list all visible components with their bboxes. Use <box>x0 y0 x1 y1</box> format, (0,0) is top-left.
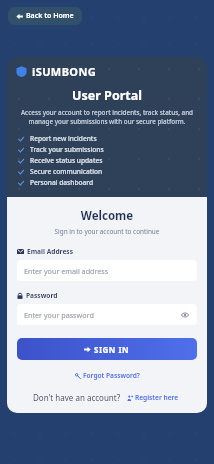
staticText: Back to Home <box>26 11 74 21</box>
staticText: User Portal <box>16 87 198 104</box>
staticText: Enter your email address <box>24 266 109 276</box>
staticText: Password <box>26 291 58 300</box>
staticText: Forgot Password? <box>83 371 140 380</box>
button[interactable]: Enter your email address <box>17 260 197 281</box>
staticText: Enter your password <box>24 310 94 320</box>
staticText: Personal dashboard <box>30 178 94 187</box>
button[interactable]: Enter your password <box>17 304 197 325</box>
staticText: Access your account to report incidents,… <box>16 108 198 126</box>
staticText: Sign in to your account to continue <box>17 227 197 236</box>
staticText: Email Address <box>27 247 73 256</box>
button[interactable]: Forgot Password? <box>72 370 143 381</box>
button[interactable]: SIGN IN <box>17 338 197 360</box>
staticText: Welcome <box>17 208 197 224</box>
button[interactable]: Show password <box>179 309 190 320</box>
staticText: Secure communication <box>30 167 103 176</box>
staticText: Track your submissions <box>30 145 104 154</box>
staticText: SIGN IN <box>94 344 130 355</box>
staticText: Receive status updates <box>30 156 103 165</box>
staticText: Don't have an account? <box>33 392 121 403</box>
button[interactable]: Back to Home <box>8 7 82 25</box>
staticText: Register here <box>135 393 179 402</box>
staticText: iSUMBONG <box>32 64 97 79</box>
button[interactable]: Register here <box>125 392 181 403</box>
staticText: Report new incidents <box>30 134 97 143</box>
